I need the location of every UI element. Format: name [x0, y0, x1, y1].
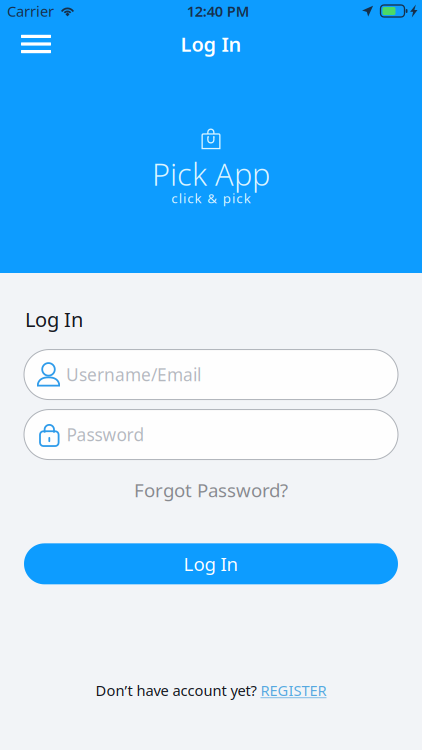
button[interactable]: Menu — [0, 22, 65, 60]
button[interactable]: Don’t have account yet? — [0, 674, 422, 706]
staticText: Username/Email — [66, 363, 201, 386]
staticText: Log In — [25, 306, 83, 333]
staticText: Log In — [183, 551, 238, 576]
staticText: Carrier — [7, 1, 54, 21]
staticText: click & pick — [171, 189, 251, 207]
staticText: REGISTER — [260, 680, 326, 700]
staticText: Log In — [180, 31, 241, 57]
staticText: Don’t have account yet? — [95, 680, 256, 700]
button[interactable]: Log In — [24, 543, 398, 584]
button[interactable]: Forgot Password? — [0, 473, 422, 507]
staticText: 12:40 PM — [187, 1, 250, 21]
staticText: Pick App — [152, 154, 270, 194]
staticText: Password — [67, 423, 145, 446]
staticText: Forgot Password? — [134, 478, 288, 502]
